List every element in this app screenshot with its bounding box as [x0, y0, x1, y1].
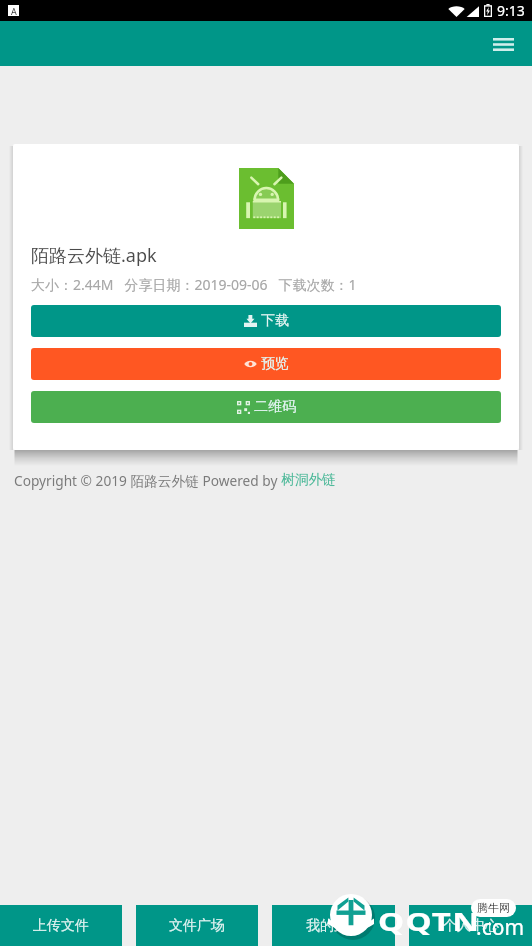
button[interactable]: 二维码 — [31, 391, 501, 423]
button[interactable]: 文件广场 — [136, 905, 258, 946]
staticText: 二维码 — [254, 398, 296, 416]
staticText: 上传文件 — [33, 917, 89, 935]
button[interactable]: 个人中心 — [409, 905, 532, 946]
staticText: 9:13 — [497, 1, 525, 20]
staticText: 预览 — [261, 355, 289, 373]
staticText: .com — [476, 913, 525, 942]
staticText: 我的文件 — [306, 917, 362, 935]
staticText: 腾牛网 — [477, 901, 510, 915]
staticText: 大小：2.44M 分享日期：2019-09-06 下载次数：1 — [31, 275, 357, 294]
staticText: 个人中心 — [443, 917, 499, 935]
staticText: 文件广场 — [169, 917, 225, 935]
button[interactable]: 上传文件 — [0, 905, 122, 946]
button[interactable]: 我的文件 — [272, 905, 395, 946]
staticText: 陌路云外链.apk — [31, 243, 157, 268]
staticText: Copyright © 2019 陌路云外链 Powered by — [14, 471, 281, 490]
staticText: 下载 — [261, 312, 289, 330]
staticText: A — [11, 5, 17, 16]
button[interactable]: 下载 — [31, 305, 501, 337]
staticText: QQTN — [378, 904, 481, 938]
button[interactable]: 预览 — [31, 348, 501, 380]
button[interactable]: Menu — [485, 26, 521, 62]
staticText: 树洞外链 — [281, 471, 336, 488]
